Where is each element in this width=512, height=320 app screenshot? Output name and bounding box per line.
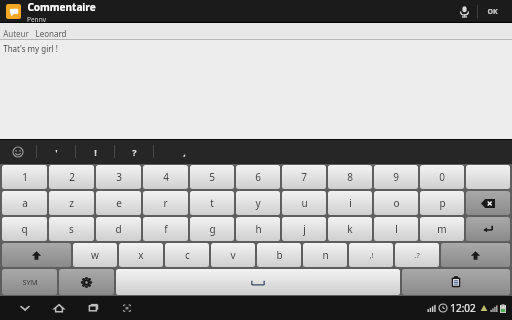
staticText: w xyxy=(91,248,99,262)
staticText: s xyxy=(69,222,74,236)
staticText: ? xyxy=(132,146,137,158)
button[interactable]: 7 xyxy=(282,165,326,189)
staticText: v xyxy=(230,248,236,262)
button[interactable]: .? xyxy=(395,243,439,267)
staticText: 12:02 xyxy=(450,301,476,315)
button[interactable] xyxy=(466,165,510,189)
button[interactable]: 2 xyxy=(49,165,94,189)
staticText: Auteur xyxy=(3,28,29,39)
staticText: g xyxy=(209,222,216,236)
button[interactable]: h xyxy=(236,217,280,241)
button[interactable]: n xyxy=(303,243,347,267)
button[interactable]: Keyboard settings xyxy=(59,269,114,295)
button[interactable]: b xyxy=(257,243,301,267)
button[interactable]: Leonard xyxy=(35,28,512,39)
staticText: f xyxy=(164,222,168,236)
button[interactable]: c xyxy=(165,243,209,267)
button[interactable]: SYM xyxy=(2,269,57,295)
button[interactable]: x xyxy=(119,243,163,267)
staticText: x xyxy=(138,248,144,262)
button[interactable]: a xyxy=(2,191,47,215)
button[interactable]: z xyxy=(49,191,94,215)
button[interactable]: q xyxy=(2,217,47,241)
button[interactable]: k xyxy=(328,217,372,241)
button[interactable]: o xyxy=(374,191,418,215)
staticText: ,! xyxy=(369,250,374,260)
button[interactable]: ' xyxy=(37,139,75,164)
staticText: u xyxy=(301,196,308,210)
button[interactable]: m xyxy=(420,217,464,241)
button[interactable]: 8 xyxy=(328,165,372,189)
button[interactable]: Voice input xyxy=(451,0,477,23)
staticText: Leonard xyxy=(35,28,67,39)
button[interactable]: OK xyxy=(478,0,506,23)
staticText: 0 xyxy=(439,170,445,184)
staticText: .? xyxy=(414,250,420,260)
button[interactable]: 9 xyxy=(374,165,418,189)
button[interactable]: d xyxy=(96,217,141,241)
staticText: q xyxy=(21,222,28,236)
staticText: 8 xyxy=(347,170,353,184)
button[interactable]: Hide keyboard xyxy=(8,296,42,320)
staticText: 4 xyxy=(163,170,169,184)
staticText: n xyxy=(322,248,329,262)
staticText: Commentaire xyxy=(27,0,96,14)
button[interactable]: j xyxy=(282,217,326,241)
button[interactable]: Enter xyxy=(466,217,510,241)
staticText: , xyxy=(183,146,186,158)
staticText: r xyxy=(163,196,168,210)
button[interactable]: u xyxy=(282,191,326,215)
button[interactable]: , xyxy=(154,139,214,164)
button[interactable]: l xyxy=(374,217,418,241)
staticText: i xyxy=(349,196,352,210)
staticText: OK xyxy=(487,7,498,17)
button[interactable]: r xyxy=(143,191,188,215)
button[interactable]: Emoji xyxy=(0,139,36,164)
staticText: p xyxy=(439,196,446,210)
button[interactable]: Space xyxy=(116,269,400,295)
staticText: 3 xyxy=(116,170,122,184)
staticText: That's my girl ! xyxy=(3,43,58,54)
button[interactable]: Backspace xyxy=(466,191,510,215)
staticText: 9 xyxy=(393,170,399,184)
button[interactable]: Home xyxy=(42,296,76,320)
button[interactable]: p xyxy=(420,191,464,215)
button[interactable]: v xyxy=(211,243,255,267)
button[interactable]: Clipboard xyxy=(402,269,510,295)
staticText: 5 xyxy=(209,170,215,184)
staticText: 2 xyxy=(69,170,75,184)
staticText: 1 xyxy=(22,170,28,184)
button[interactable]: 4 xyxy=(143,165,188,189)
staticText: t xyxy=(210,196,214,210)
button[interactable]: Shift xyxy=(2,243,71,267)
staticText: e xyxy=(116,196,122,210)
staticText: y xyxy=(255,196,261,210)
staticText: Penny xyxy=(27,15,46,23)
button[interactable]: 0 xyxy=(420,165,464,189)
button[interactable]: f xyxy=(143,217,188,241)
button[interactable]: w xyxy=(73,243,117,267)
staticText: SYM xyxy=(22,277,38,287)
button[interactable]: y xyxy=(236,191,280,215)
staticText: o xyxy=(393,196,400,210)
button[interactable]: 1 xyxy=(2,165,47,189)
button[interactable]: ! xyxy=(76,139,114,164)
button[interactable]: Shift xyxy=(441,243,510,267)
button[interactable]: g xyxy=(190,217,234,241)
staticText: l xyxy=(395,222,398,236)
staticText: ' xyxy=(55,146,58,158)
button[interactable]: That's my girl ! xyxy=(3,43,512,139)
button[interactable]: Recent apps xyxy=(76,296,110,320)
button[interactable]: i xyxy=(328,191,372,215)
staticText: j xyxy=(303,222,306,236)
button[interactable]: ? xyxy=(115,139,153,164)
button[interactable]: Screenshot xyxy=(110,296,144,320)
button[interactable]: 3 xyxy=(96,165,141,189)
button[interactable]: ,! xyxy=(349,243,393,267)
button[interactable]: t xyxy=(190,191,234,215)
button[interactable]: e xyxy=(96,191,141,215)
button[interactable]: 6 xyxy=(236,165,280,189)
staticText: m xyxy=(437,222,447,236)
button[interactable]: 5 xyxy=(190,165,234,189)
button[interactable]: s xyxy=(49,217,94,241)
